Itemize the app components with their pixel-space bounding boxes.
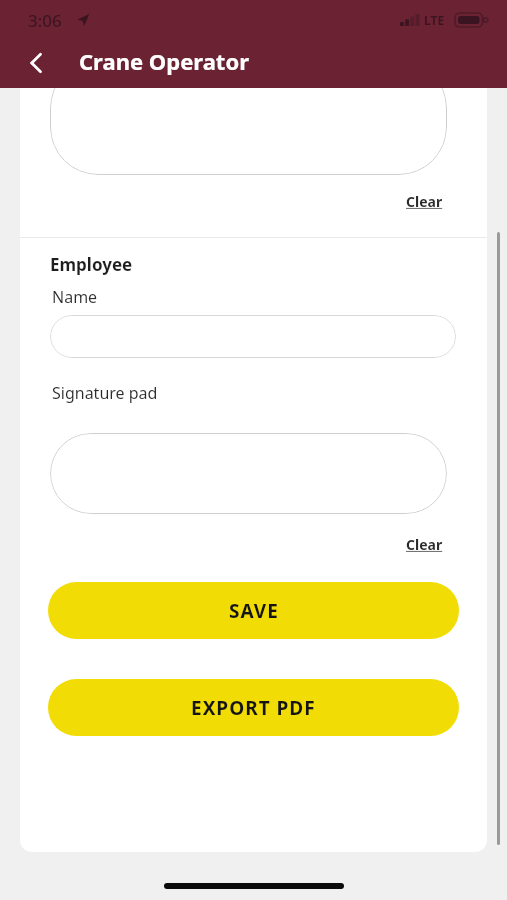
staticText: EXPORT PDF xyxy=(191,695,316,721)
button[interactable]: Name input xyxy=(50,315,456,358)
staticText: Crane Operator xyxy=(79,46,249,76)
button[interactable]: Back xyxy=(14,40,60,86)
staticText: 3:06 xyxy=(28,9,62,32)
button[interactable]: Employee signature pad xyxy=(50,433,447,514)
button[interactable]: Clear xyxy=(391,188,457,214)
staticText: Employee xyxy=(50,253,133,276)
staticText: Signature pad xyxy=(52,382,158,404)
button[interactable]: SAVE xyxy=(48,582,459,639)
button[interactable]: EXPORT PDF xyxy=(48,679,459,736)
staticText: SAVE xyxy=(229,598,279,624)
button[interactable]: Clear xyxy=(391,531,457,557)
staticText: Name xyxy=(52,286,98,308)
staticText: Clear xyxy=(406,192,443,211)
button[interactable]: Signature pad xyxy=(50,88,447,175)
staticText: Clear xyxy=(406,535,443,554)
staticText: LTE xyxy=(424,12,445,28)
